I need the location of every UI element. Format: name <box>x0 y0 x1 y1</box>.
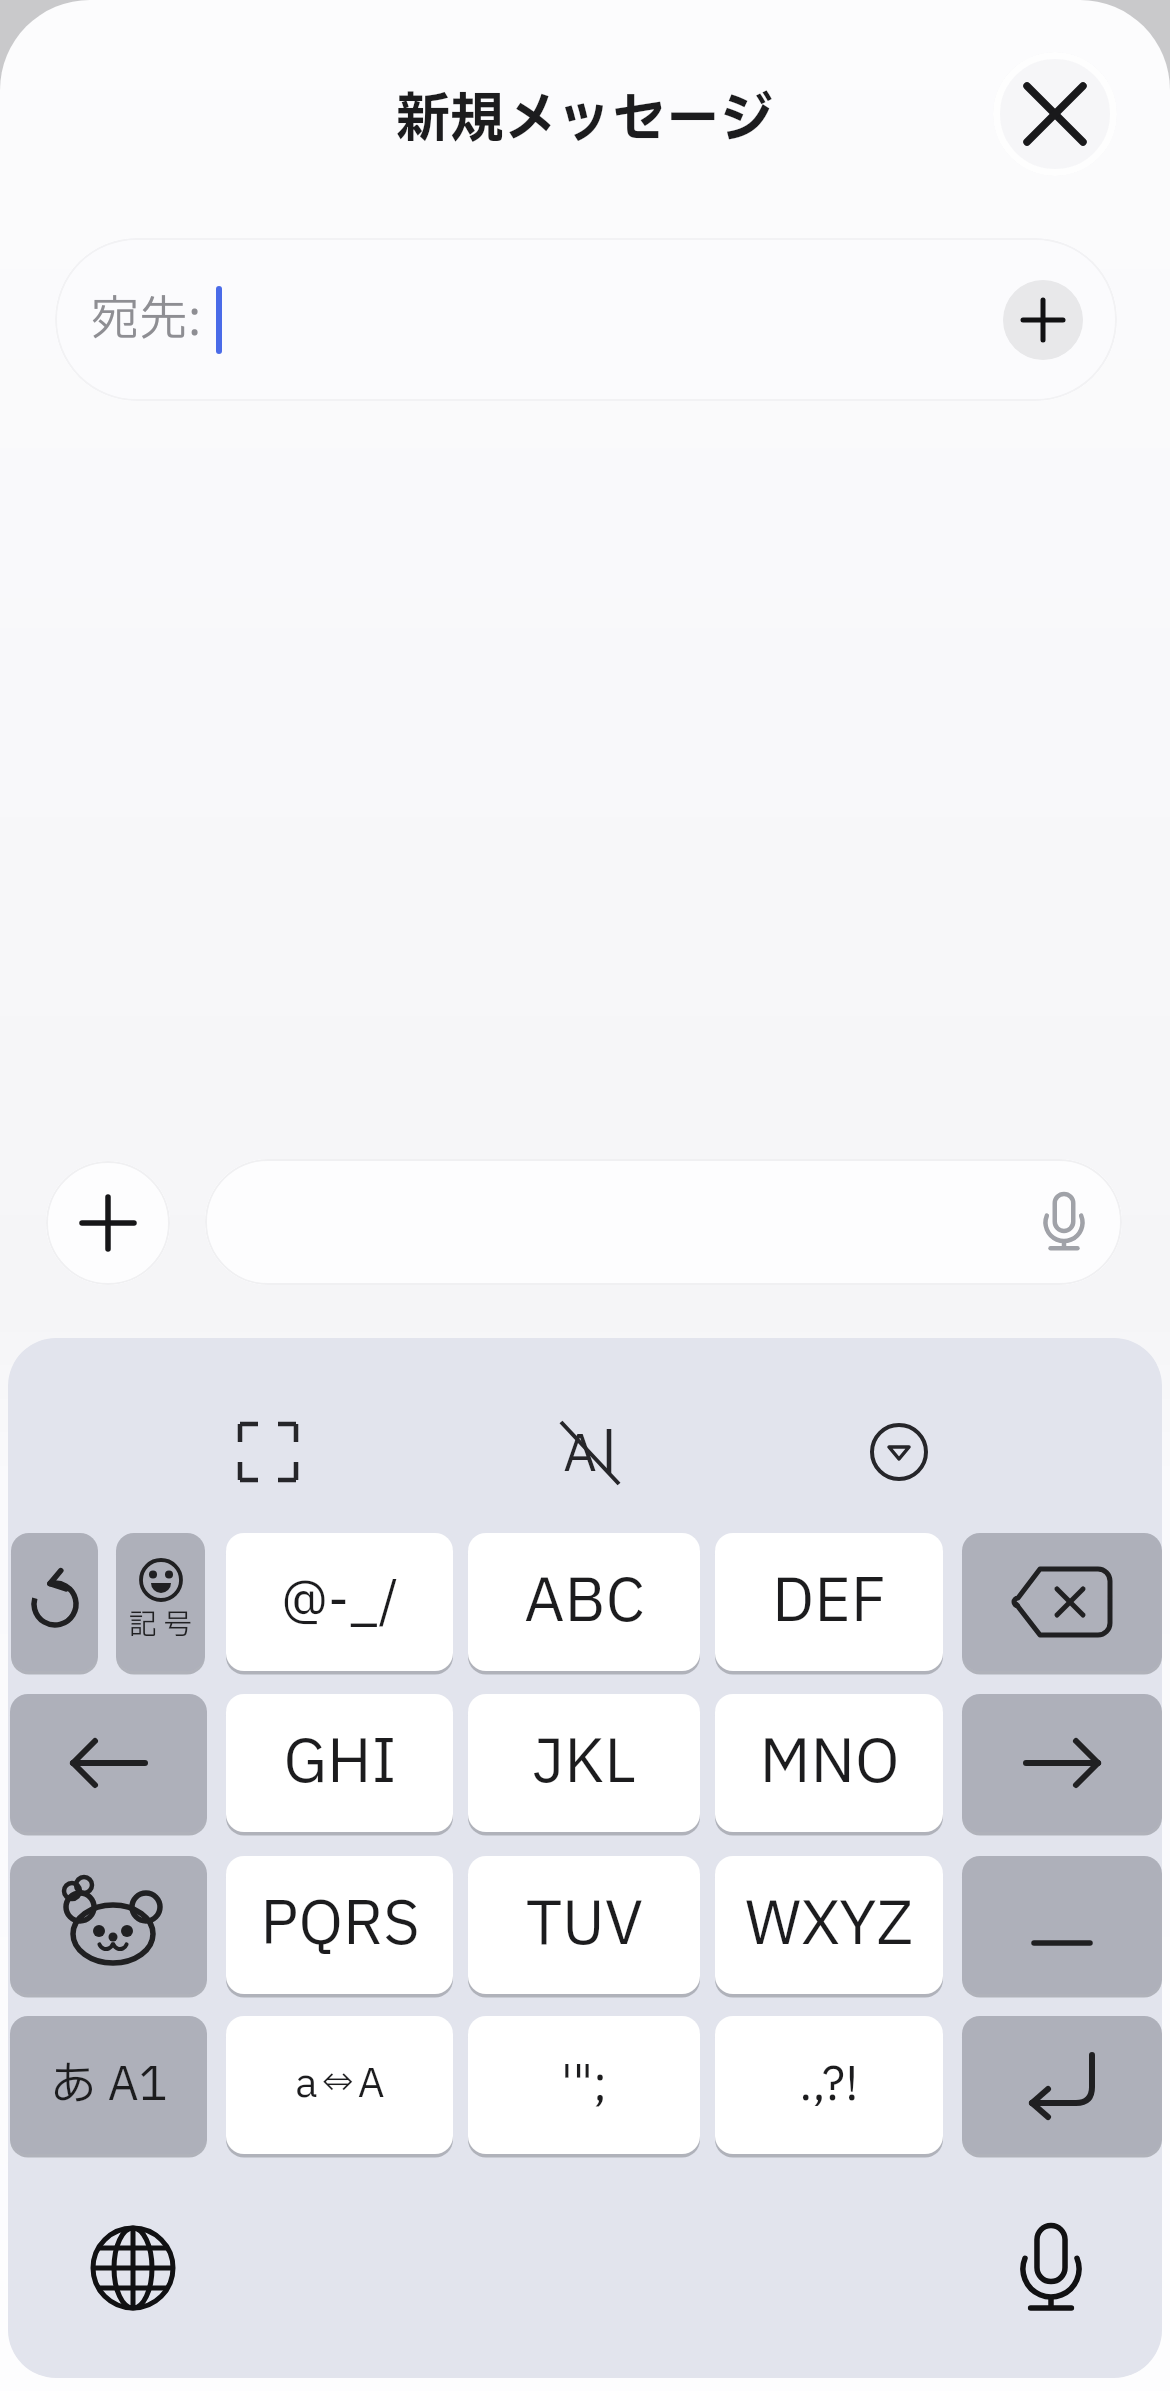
button[interactable]: MNO <box>715 1694 943 1832</box>
button[interactable] <box>205 1159 1122 1285</box>
button[interactable]: WXYZ <box>715 1856 943 1994</box>
staticText: PQRS <box>260 1880 420 1970</box>
staticText: .,?! <box>799 2051 859 2120</box>
button[interactable]: .,?! <box>715 2016 943 2154</box>
button[interactable] <box>962 1694 1162 1832</box>
staticText: 記 号 <box>129 1604 192 1646</box>
button[interactable] <box>962 2016 1162 2154</box>
button[interactable] <box>240 1424 296 1480</box>
button[interactable] <box>871 1424 927 1480</box>
button[interactable] <box>11 1533 98 1671</box>
button[interactable]: JKL <box>468 1694 700 1832</box>
button[interactable] <box>1007 2224 1095 2312</box>
staticText: a⇔A <box>295 2055 385 2115</box>
staticText: '"; <box>561 2051 607 2120</box>
button[interactable] <box>962 1856 1162 1994</box>
staticText: TUV <box>526 1880 643 1970</box>
button[interactable]: あ A1 <box>10 2016 207 2154</box>
staticText: DEF <box>772 1557 886 1647</box>
staticText: 宛先: <box>91 284 202 356</box>
button[interactable]: '"; <box>468 2016 700 2154</box>
staticText: 新規メッセージ <box>396 80 774 161</box>
button[interactable]: a⇔A <box>226 2016 453 2154</box>
button[interactable]: 宛先: <box>55 238 1117 401</box>
button[interactable] <box>10 1856 207 1994</box>
staticText: A <box>563 1418 597 1488</box>
button[interactable] <box>10 1694 207 1832</box>
staticText: WXYZ <box>745 1880 913 1970</box>
button[interactable]: ABC <box>468 1533 700 1671</box>
button[interactable]: 記 号 <box>116 1533 205 1671</box>
button[interactable] <box>91 2226 175 2310</box>
button[interactable]: TUV <box>468 1856 700 1994</box>
button[interactable]: @-_/ <box>226 1533 453 1671</box>
staticText: ABC <box>524 1557 645 1647</box>
staticText: MNO <box>759 1718 900 1808</box>
button[interactable]: A <box>549 1418 633 1488</box>
button[interactable]: GHI <box>226 1694 453 1832</box>
button[interactable] <box>962 1533 1162 1671</box>
staticText: JKL <box>532 1718 636 1808</box>
button[interactable] <box>1003 280 1083 360</box>
staticText: あ A1 <box>50 2051 168 2120</box>
button[interactable]: DEF <box>715 1533 943 1671</box>
staticText: GHI <box>283 1718 397 1808</box>
button[interactable] <box>46 1161 170 1285</box>
button[interactable] <box>993 52 1117 176</box>
staticText: @-_/ <box>281 1565 399 1640</box>
button[interactable]: PQRS <box>226 1856 453 1994</box>
